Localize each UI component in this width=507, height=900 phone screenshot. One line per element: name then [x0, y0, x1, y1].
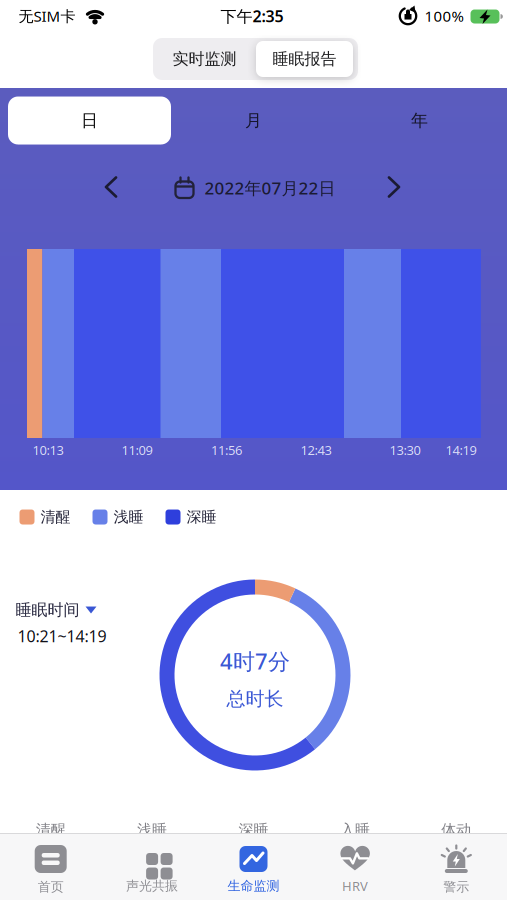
button[interactable]: 睡眠时间 [15, 600, 96, 620]
staticText: 11:09 [121, 441, 152, 459]
staticText: 日 [81, 110, 98, 131]
button[interactable]: HRV [304, 840, 405, 900]
staticText: 浅睡 [137, 821, 167, 839]
staticText: 10:21~14:19 [17, 625, 106, 647]
staticText: 下午2:35 [220, 5, 283, 27]
staticText: 深睡 [238, 821, 268, 839]
button[interactable]: 声光共振 [102, 840, 203, 900]
button[interactable]: 睡眠报告 [256, 41, 353, 77]
button[interactable]: 首页 [0, 840, 101, 900]
staticText: 清醒 [40, 508, 70, 526]
staticText: 深睡 [186, 508, 216, 526]
button[interactable]: 生命监测 [203, 840, 304, 900]
staticText: 总时长 [226, 687, 283, 711]
button[interactable]: 实时监测 [153, 38, 256, 80]
staticText: 清醒 [36, 821, 66, 839]
staticText: 浅睡 [113, 508, 143, 526]
staticText: 4时7分 [220, 646, 290, 676]
button[interactable]: 年 [338, 96, 501, 144]
button[interactable]: 后一天 [387, 176, 400, 198]
staticText: 10:13 [32, 441, 63, 459]
staticText: HRV [342, 877, 368, 895]
staticText: 年 [411, 110, 428, 131]
staticText: 生命监测 [227, 878, 279, 894]
staticText: 体动 [441, 821, 471, 839]
staticText: 14:19 [445, 441, 476, 459]
button[interactable]: 2022年07月22日 [174, 177, 335, 199]
staticText: 100% [424, 6, 463, 26]
staticText: 11:56 [211, 441, 242, 459]
staticText: 月 [245, 110, 262, 131]
staticText: 13:30 [389, 441, 420, 459]
staticText: 警示 [443, 879, 469, 895]
staticText: 12:43 [300, 441, 331, 459]
button[interactable]: 日 [8, 96, 171, 144]
staticText: 入睡 [340, 821, 370, 839]
staticText: 实时监测 [172, 49, 236, 69]
button[interactable]: 警示 [406, 840, 507, 900]
staticText: 声光共振 [126, 878, 178, 894]
staticText: 无SIM卡 [18, 6, 75, 26]
button[interactable]: 月 [172, 96, 335, 144]
staticText: 睡眠时间 [15, 600, 79, 620]
staticText: 首页 [38, 879, 64, 895]
staticText: 2022年07月22日 [204, 177, 335, 199]
button[interactable]: 前一天 [104, 176, 117, 198]
staticText: 睡眠报告 [272, 49, 336, 69]
